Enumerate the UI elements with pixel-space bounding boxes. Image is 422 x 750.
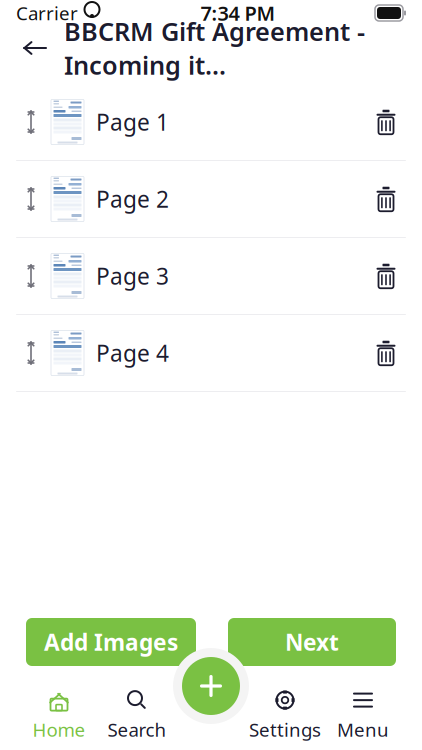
button[interactable]: Reorder Page 1	[14, 95, 48, 149]
staticText: Home	[32, 717, 85, 742]
button[interactable]: Reorder Page 3	[14, 249, 48, 303]
button[interactable]: Reorder Page 4	[14, 326, 48, 380]
staticText: Carrier	[16, 1, 78, 25]
button[interactable]: Add	[173, 648, 249, 724]
button[interactable]: Delete Page 1	[364, 97, 408, 147]
button[interactable]: Back	[18, 33, 52, 63]
staticText: Page 2	[96, 184, 169, 214]
staticText: Search	[107, 717, 166, 742]
button[interactable]: Delete Page 4	[364, 328, 408, 378]
button[interactable]: Delete Page 2	[364, 174, 408, 224]
button[interactable]: Home	[20, 687, 98, 743]
staticText: BBCRM Gift Agreement - Incoming it...	[64, 14, 365, 82]
staticText: Page 1	[96, 107, 169, 137]
staticText: 7:34 PM	[200, 0, 275, 26]
staticText: Menu	[337, 717, 389, 742]
button[interactable]: Next	[228, 618, 396, 666]
button[interactable]: Reorder Page 2	[14, 172, 48, 226]
button[interactable]: Menu	[324, 687, 402, 743]
button[interactable]: Delete Page 3	[364, 251, 408, 301]
button[interactable]: Search	[98, 687, 176, 743]
button[interactable]: Add Images	[26, 618, 196, 666]
staticText: Next	[285, 627, 339, 657]
staticText: Settings	[249, 717, 321, 742]
staticText: Page 4	[96, 338, 169, 368]
staticText: Add Images	[44, 627, 178, 657]
button[interactable]: Settings	[246, 687, 324, 743]
staticText: Page 3	[96, 261, 169, 291]
